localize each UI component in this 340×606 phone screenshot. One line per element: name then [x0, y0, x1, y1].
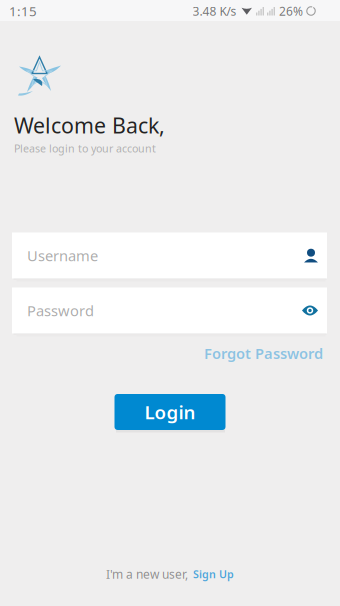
button[interactable]: Password [12, 287, 327, 336]
staticText: I'm a new user, [106, 566, 188, 582]
button[interactable]: Login [114, 394, 225, 433]
staticText: Login [144, 400, 195, 424]
button[interactable]: Forgot Password [204, 343, 323, 363]
staticText: Forgot Password [204, 343, 323, 363]
button[interactable]: Sign Up [193, 567, 234, 581]
button[interactable]: Username [12, 232, 327, 281]
staticText: 3.48 K/s [192, 3, 236, 19]
staticText: Password [27, 301, 94, 320]
staticText: Sign Up [193, 567, 234, 581]
staticText: Username [27, 246, 98, 265]
staticText: 1:15 [9, 2, 37, 20]
staticText: Welcome Back, [14, 111, 165, 139]
staticText: Please login to your account [14, 141, 156, 155]
staticText: 26% [279, 3, 303, 19]
